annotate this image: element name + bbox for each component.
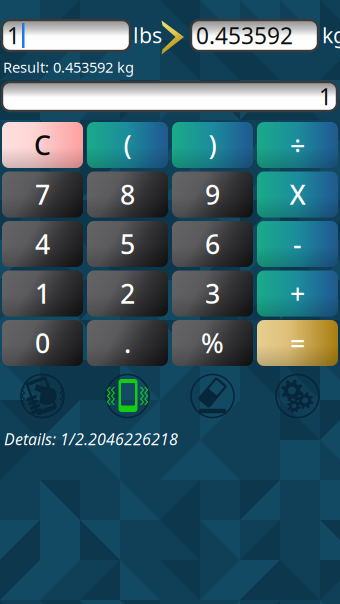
staticText: 8 [120, 177, 135, 212]
staticText: 4 [35, 226, 50, 262]
staticText: % [201, 325, 224, 361]
staticText: Details: 1/2.2046226218 [4, 428, 178, 450]
staticText: 0.453592 [196, 20, 293, 50]
staticText: Result: 0.453592 kg [3, 57, 134, 77]
button[interactable]: ÷ [257, 122, 338, 168]
button[interactable]: + [257, 270, 338, 316]
button[interactable]: 8 [87, 171, 168, 217]
button[interactable]: Vibration [87, 373, 168, 419]
button[interactable]: 7 [2, 171, 83, 217]
button[interactable]: 6 [172, 221, 253, 267]
staticText: ÷ [290, 127, 305, 163]
staticText: lbs [133, 21, 162, 49]
staticText: . [124, 325, 131, 361]
staticText: X [289, 177, 305, 212]
staticText: 1 [35, 276, 50, 311]
button[interactable]: Clear [172, 373, 253, 419]
button[interactable]: = [257, 320, 338, 366]
staticText: ( [123, 127, 131, 163]
staticText: 3 [205, 276, 220, 311]
button[interactable]: ) [172, 122, 253, 168]
staticText: = [290, 325, 305, 361]
button[interactable]: Shake to convert [2, 373, 83, 419]
button[interactable]: . [87, 320, 168, 366]
button[interactable]: 5 [87, 221, 168, 267]
staticText: 0 [35, 325, 50, 361]
button[interactable]: - [257, 221, 338, 267]
staticText: ) [208, 127, 216, 163]
staticText: - [293, 226, 302, 262]
button[interactable]: 2 [87, 270, 168, 316]
staticText: 5 [120, 226, 135, 262]
staticText: 6 [205, 226, 220, 262]
staticText: kg [322, 21, 340, 49]
button[interactable]: 0 [2, 320, 83, 366]
button[interactable]: 4 [2, 221, 83, 267]
staticText: 7 [35, 177, 50, 212]
staticText: 2 [120, 276, 135, 311]
button[interactable]: X [257, 171, 338, 217]
button[interactable]: 1 [2, 270, 83, 316]
button[interactable]: 9 [172, 171, 253, 217]
staticText: + [290, 276, 305, 311]
staticText: 1 [7, 20, 20, 50]
button[interactable]: C [2, 122, 83, 168]
button[interactable]: ( [87, 122, 168, 168]
staticText: C [34, 127, 51, 163]
button[interactable]: Settings [257, 373, 338, 419]
button[interactable]: 3 [172, 270, 253, 316]
staticText: 9 [205, 177, 220, 212]
staticText: 1 [319, 81, 332, 111]
button[interactable]: % [172, 320, 253, 366]
